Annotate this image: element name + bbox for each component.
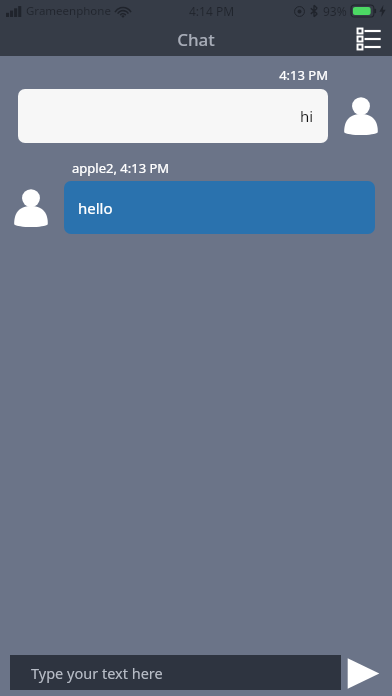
staticText: hello [78,198,113,218]
staticText: apple2, 4:13 PM [72,159,170,177]
staticText: 4:14 PM [189,3,235,19]
staticText: Grameenphone [26,3,111,19]
staticText: hi [300,106,314,126]
staticText: Chat [177,28,215,51]
button[interactable]: Menu [348,22,392,56]
button[interactable]: hi [18,89,328,143]
staticText: 93% [323,3,347,19]
button[interactable]: hello [64,181,375,234]
button[interactable]: Type your text here [10,655,341,690]
staticText: 4:13 PM [0,66,328,84]
staticText: Type your text here [31,663,163,683]
button[interactable]: Send [341,651,385,695]
